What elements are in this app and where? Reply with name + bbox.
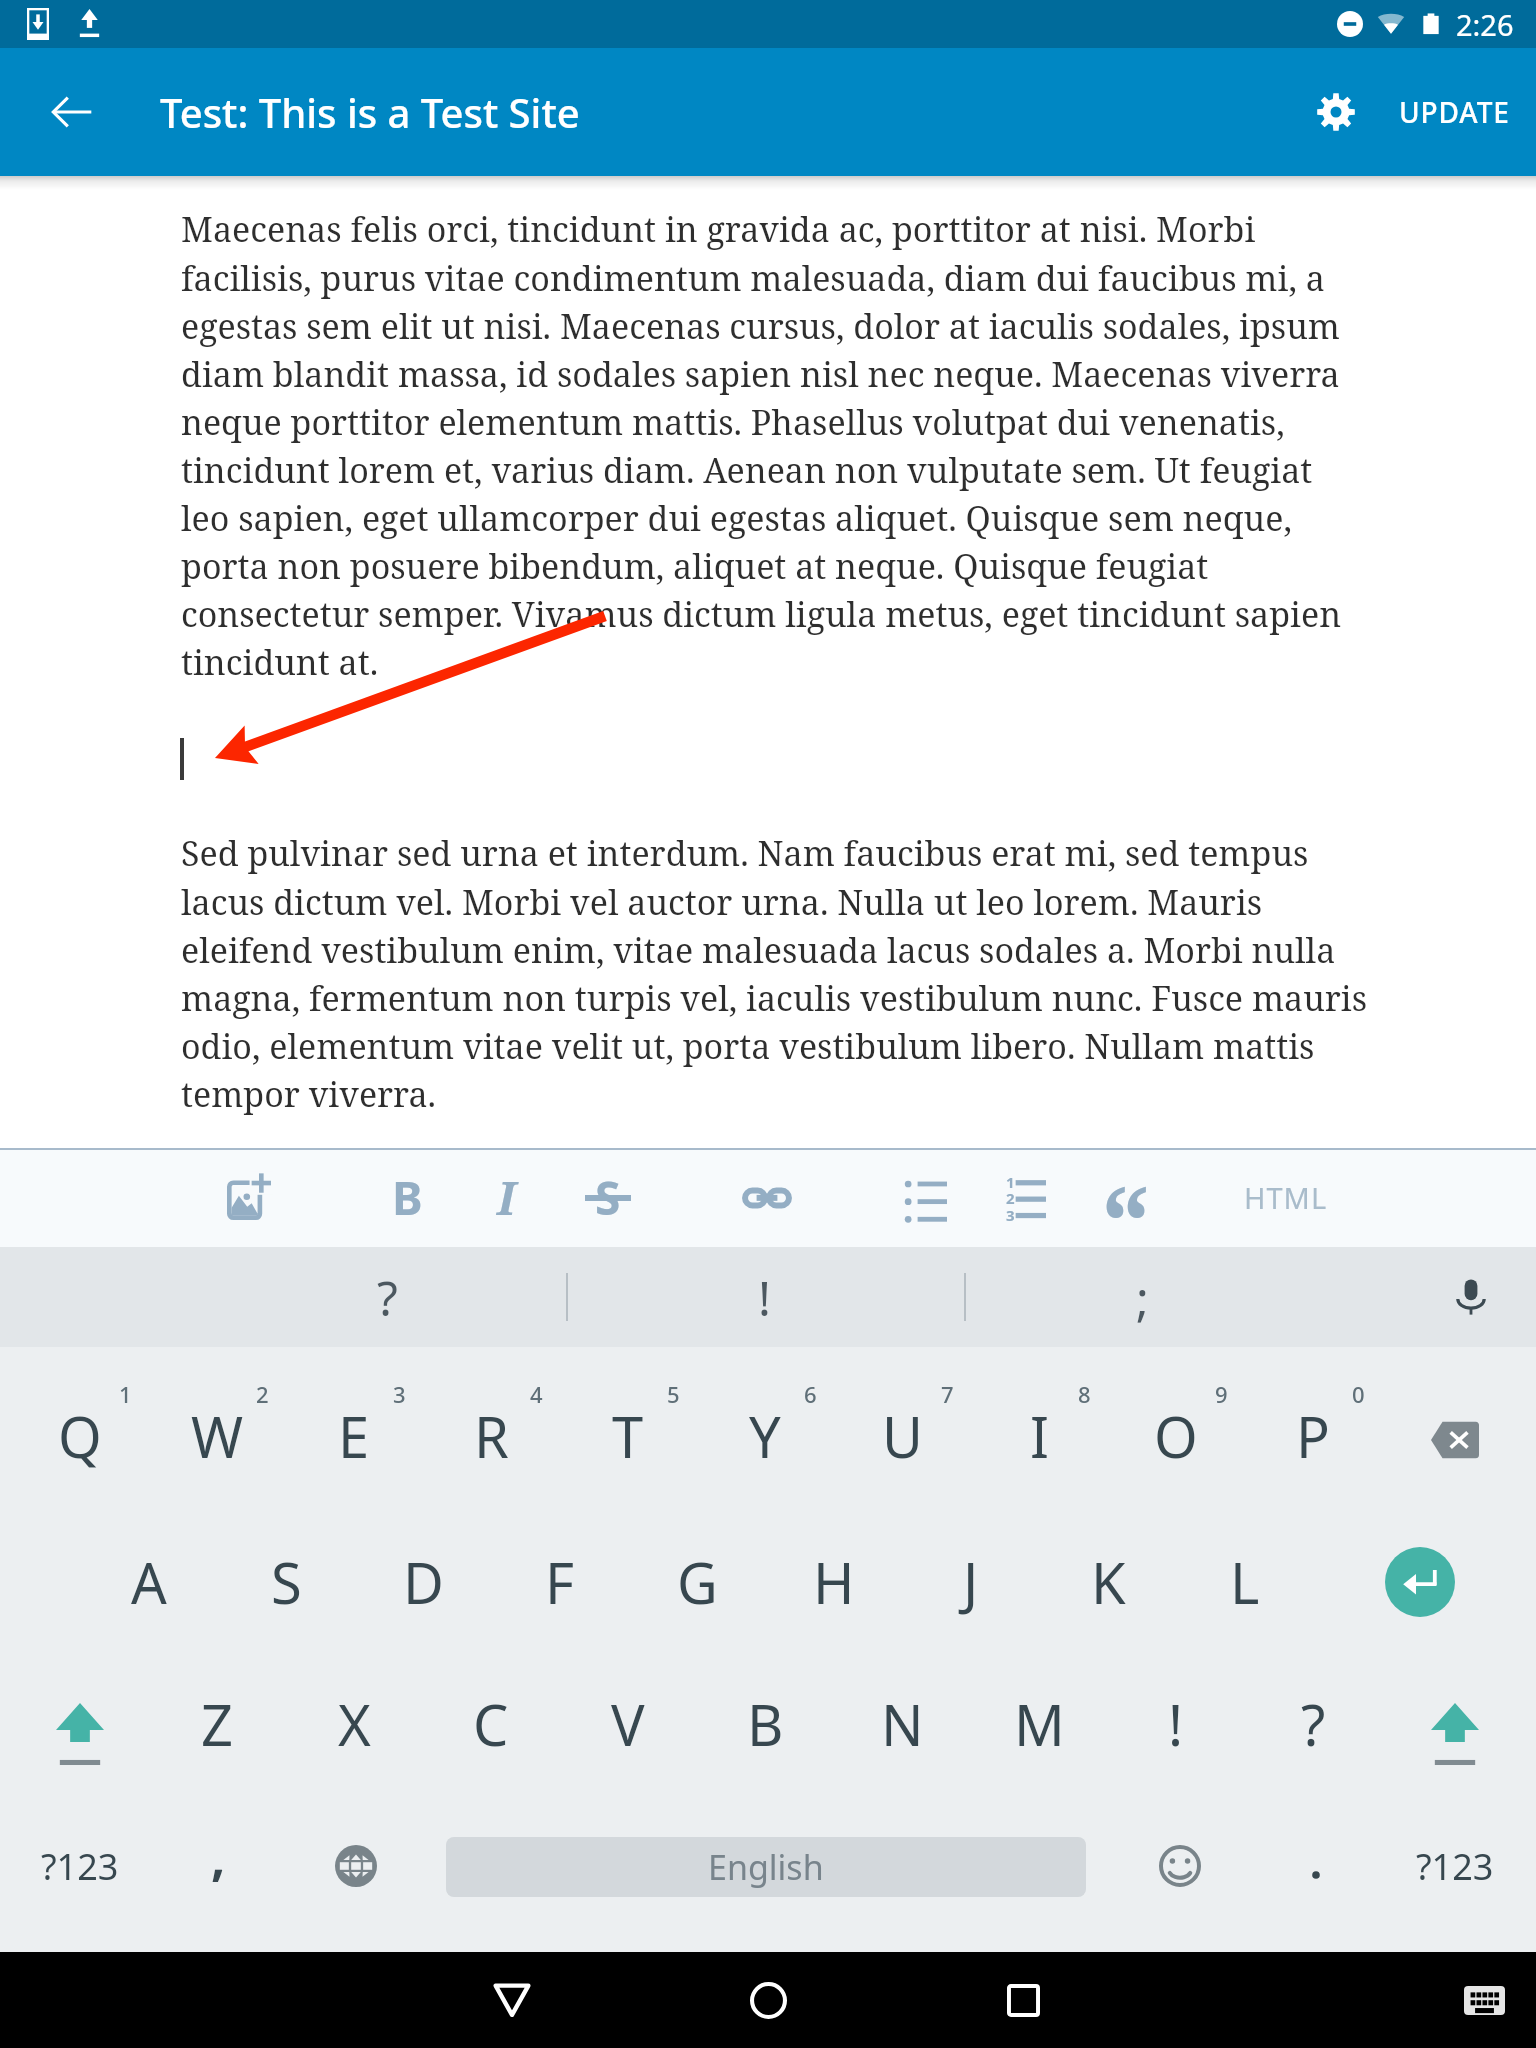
button[interactable]: 4 <box>423 1369 559 1511</box>
staticText: Sed pulvinar sed urna et interdum. Nam f… <box>181 830 1381 1117</box>
button[interactable]: S <box>218 1511 354 1653</box>
button[interactable]: ?123 <box>12 1795 148 1937</box>
button[interactable]: 3 <box>286 1369 422 1511</box>
button[interactable]: M <box>971 1653 1107 1795</box>
button[interactable]: D <box>355 1511 491 1653</box>
staticText: ; <box>1136 1265 1149 1330</box>
staticText: 7 <box>941 1379 954 1409</box>
staticText: “ <box>1101 1152 1151 1251</box>
staticText: UPDATE <box>1399 93 1510 131</box>
staticText: 6 <box>804 1379 817 1409</box>
staticText: M <box>1014 1686 1065 1762</box>
staticText: N <box>881 1686 924 1762</box>
button[interactable]: C <box>423 1653 559 1795</box>
staticText: B <box>747 1686 784 1762</box>
staticText: ! <box>758 1265 771 1330</box>
button[interactable]: 9 <box>1108 1369 1244 1511</box>
button[interactable]: Emoji <box>1112 1795 1248 1937</box>
button[interactable]: G <box>629 1511 765 1653</box>
button[interactable]: L <box>1177 1511 1313 1653</box>
staticText: 3 <box>393 1379 406 1409</box>
button[interactable]: Numbered list <box>976 1148 1072 1247</box>
button[interactable]: N <box>834 1653 970 1795</box>
button[interactable]: 1 <box>12 1369 148 1511</box>
button[interactable]: HTML <box>1238 1148 1334 1247</box>
button[interactable]: 5 <box>560 1369 696 1511</box>
button[interactable]: Shift <box>12 1653 148 1795</box>
staticText: 0 <box>1352 1379 1365 1409</box>
button[interactable]: Bold <box>359 1148 455 1247</box>
button[interactable]: 8 <box>971 1369 1107 1511</box>
button[interactable]: Settings <box>1280 56 1392 168</box>
button[interactable]: X <box>286 1653 422 1795</box>
staticText: T <box>612 1398 644 1474</box>
button[interactable]: Change language <box>288 1795 424 1937</box>
button[interactable]: K <box>1040 1511 1176 1653</box>
staticText: I <box>497 1166 516 1229</box>
button[interactable]: ? <box>1245 1653 1381 1795</box>
button[interactable]: Voice input <box>1406 1247 1536 1347</box>
staticText: 2:26 <box>1456 5 1514 44</box>
button[interactable]: Shift <box>1387 1653 1523 1795</box>
staticText: Q <box>58 1398 102 1474</box>
button[interactable]: Enter <box>1352 1511 1488 1653</box>
staticText: ? <box>1301 1686 1326 1762</box>
staticText: W <box>191 1398 244 1474</box>
button[interactable]: H <box>766 1511 902 1653</box>
staticText: 1 <box>1006 1172 1015 1192</box>
staticText: H <box>813 1544 855 1620</box>
staticText: A <box>131 1544 167 1620</box>
button[interactable] <box>1248 1795 1384 1937</box>
button[interactable]: Z <box>149 1653 285 1795</box>
button[interactable]: ! <box>1108 1653 1244 1795</box>
button[interactable]: ?123 <box>1387 1795 1523 1937</box>
staticText: 5 <box>667 1379 680 1409</box>
button[interactable]: Link <box>719 1148 815 1247</box>
button[interactable]: J <box>903 1511 1039 1653</box>
staticText: 2 <box>256 1379 269 1409</box>
button[interactable]: English <box>446 1837 1086 1897</box>
button[interactable]: 6 <box>697 1369 833 1511</box>
button[interactable]: B <box>697 1653 833 1795</box>
button[interactable]: 2 <box>149 1369 285 1511</box>
button[interactable]: UPDATE <box>1399 48 1536 176</box>
button[interactable]: F <box>492 1511 628 1653</box>
staticText: Y <box>749 1398 781 1474</box>
button[interactable]: , <box>152 1795 288 1937</box>
button[interactable]: Home <box>708 1952 828 2048</box>
staticText: S <box>595 1166 621 1229</box>
button[interactable]: Strikethrough <box>560 1148 656 1247</box>
staticText: 9 <box>1215 1379 1228 1409</box>
button[interactable]: Quote <box>1074 1148 1170 1247</box>
staticText: ! <box>1168 1686 1184 1762</box>
staticText: L <box>1230 1544 1260 1620</box>
button[interactable]: Add media <box>201 1148 297 1247</box>
staticText: K <box>1091 1544 1126 1620</box>
staticText: HTML <box>1244 1178 1328 1217</box>
button[interactable]: 7 <box>834 1369 970 1511</box>
button[interactable]: 0 <box>1245 1369 1381 1511</box>
staticText: C <box>473 1686 509 1762</box>
button[interactable]: A <box>81 1511 217 1653</box>
button[interactable]: ! <box>674 1247 854 1347</box>
staticText: G <box>677 1544 718 1620</box>
staticText: ?123 <box>41 1842 119 1891</box>
staticText: B <box>392 1166 423 1229</box>
button[interactable]: Recent apps <box>963 1952 1083 2048</box>
button[interactable]: ; <box>1052 1247 1232 1347</box>
staticText: O <box>1154 1398 1198 1474</box>
button[interactable]: Bulleted list <box>878 1148 974 1247</box>
button[interactable]: ? <box>297 1247 477 1347</box>
staticText: D <box>403 1544 444 1620</box>
staticText: 3 <box>1006 1205 1015 1225</box>
button[interactable]: Back <box>14 54 130 170</box>
staticText: P <box>1296 1398 1330 1474</box>
staticText: F <box>545 1544 575 1620</box>
staticText: I <box>1030 1398 1049 1474</box>
button[interactable]: Backspace <box>1387 1369 1523 1511</box>
button[interactable]: Back <box>452 1952 572 2048</box>
staticText: , <box>211 1823 226 1891</box>
button[interactable]: Italic <box>458 1148 554 1247</box>
button[interactable]: V <box>560 1653 696 1795</box>
button[interactable]: Switch keyboard <box>1434 1952 1534 2048</box>
